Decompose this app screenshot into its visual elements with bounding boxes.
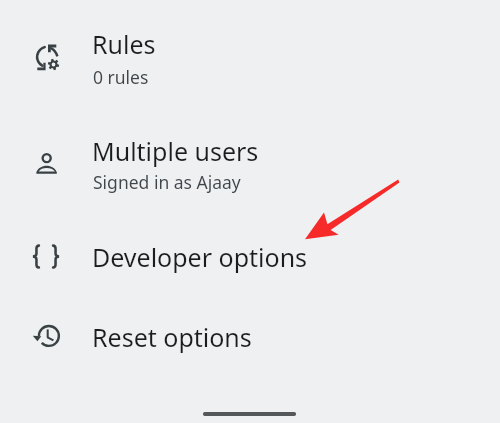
- staticText: Signed in as Ajaay: [93, 170, 241, 194]
- staticText: Rules: [92, 27, 156, 61]
- staticText: 0 rules: [93, 65, 149, 89]
- button[interactable]: Multiple users: [0, 110, 500, 216]
- button[interactable]: Rules: [0, 4, 500, 110]
- button[interactable]: Developer options: [0, 216, 500, 297]
- staticText: Multiple users: [92, 134, 259, 168]
- button[interactable]: Reset options: [0, 297, 500, 378]
- other: Home: [203, 412, 296, 416]
- staticText: Reset options: [92, 320, 252, 354]
- staticText: Developer options: [92, 240, 308, 274]
